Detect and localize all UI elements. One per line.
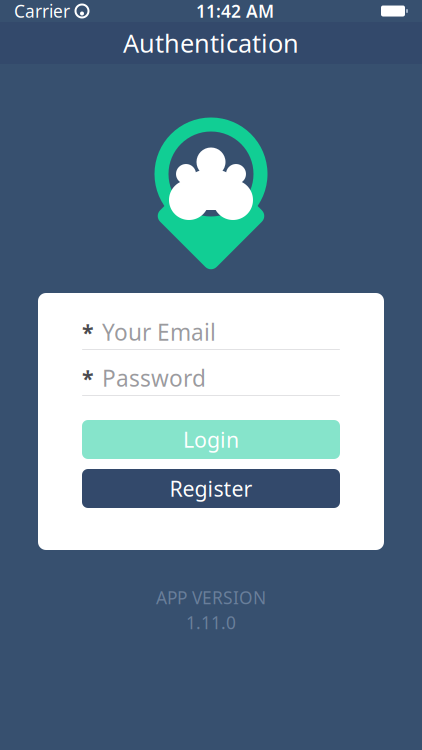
button[interactable]: Login [82, 420, 340, 459]
staticText: Login [183, 425, 239, 454]
staticText: Register [169, 474, 252, 503]
staticText: Authentication [123, 26, 299, 60]
staticText: 11:42 AM [196, 0, 274, 22]
button[interactable]: Register [82, 469, 340, 508]
staticText: * [82, 364, 94, 392]
staticText: Carrier [14, 0, 70, 22]
staticText: * [82, 318, 94, 346]
staticText: APP VERSION [156, 586, 266, 609]
staticText: 1.11.0 [186, 611, 236, 634]
staticText: Your Email [102, 317, 216, 347]
staticText: Password [102, 363, 206, 393]
